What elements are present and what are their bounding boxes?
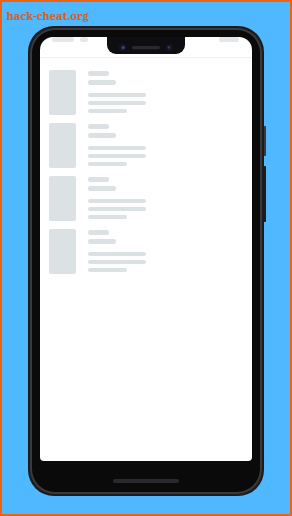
staticText: hack-cheat.org <box>6 8 89 23</box>
button[interactable] <box>40 226 252 279</box>
button[interactable] <box>40 67 252 120</box>
button[interactable] <box>40 173 252 226</box>
button[interactable] <box>40 120 252 173</box>
